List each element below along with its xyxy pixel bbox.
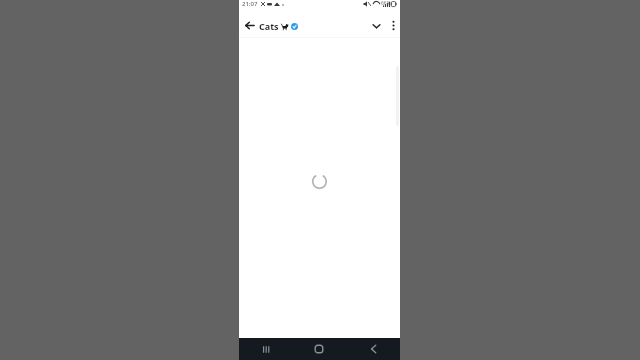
button[interactable]: Recent apps [239,338,292,360]
button[interactable]: Home [292,338,346,360]
staticText: 21:07 [242,0,258,8]
button[interactable]: Back [239,14,259,37]
button[interactable]: Expand [366,14,386,37]
staticText: 66% [381,0,391,7]
staticText: Cats [259,20,279,32]
button[interactable]: More options [386,14,400,37]
button[interactable]: Cats [259,20,366,32]
button[interactable]: Back [346,338,400,360]
